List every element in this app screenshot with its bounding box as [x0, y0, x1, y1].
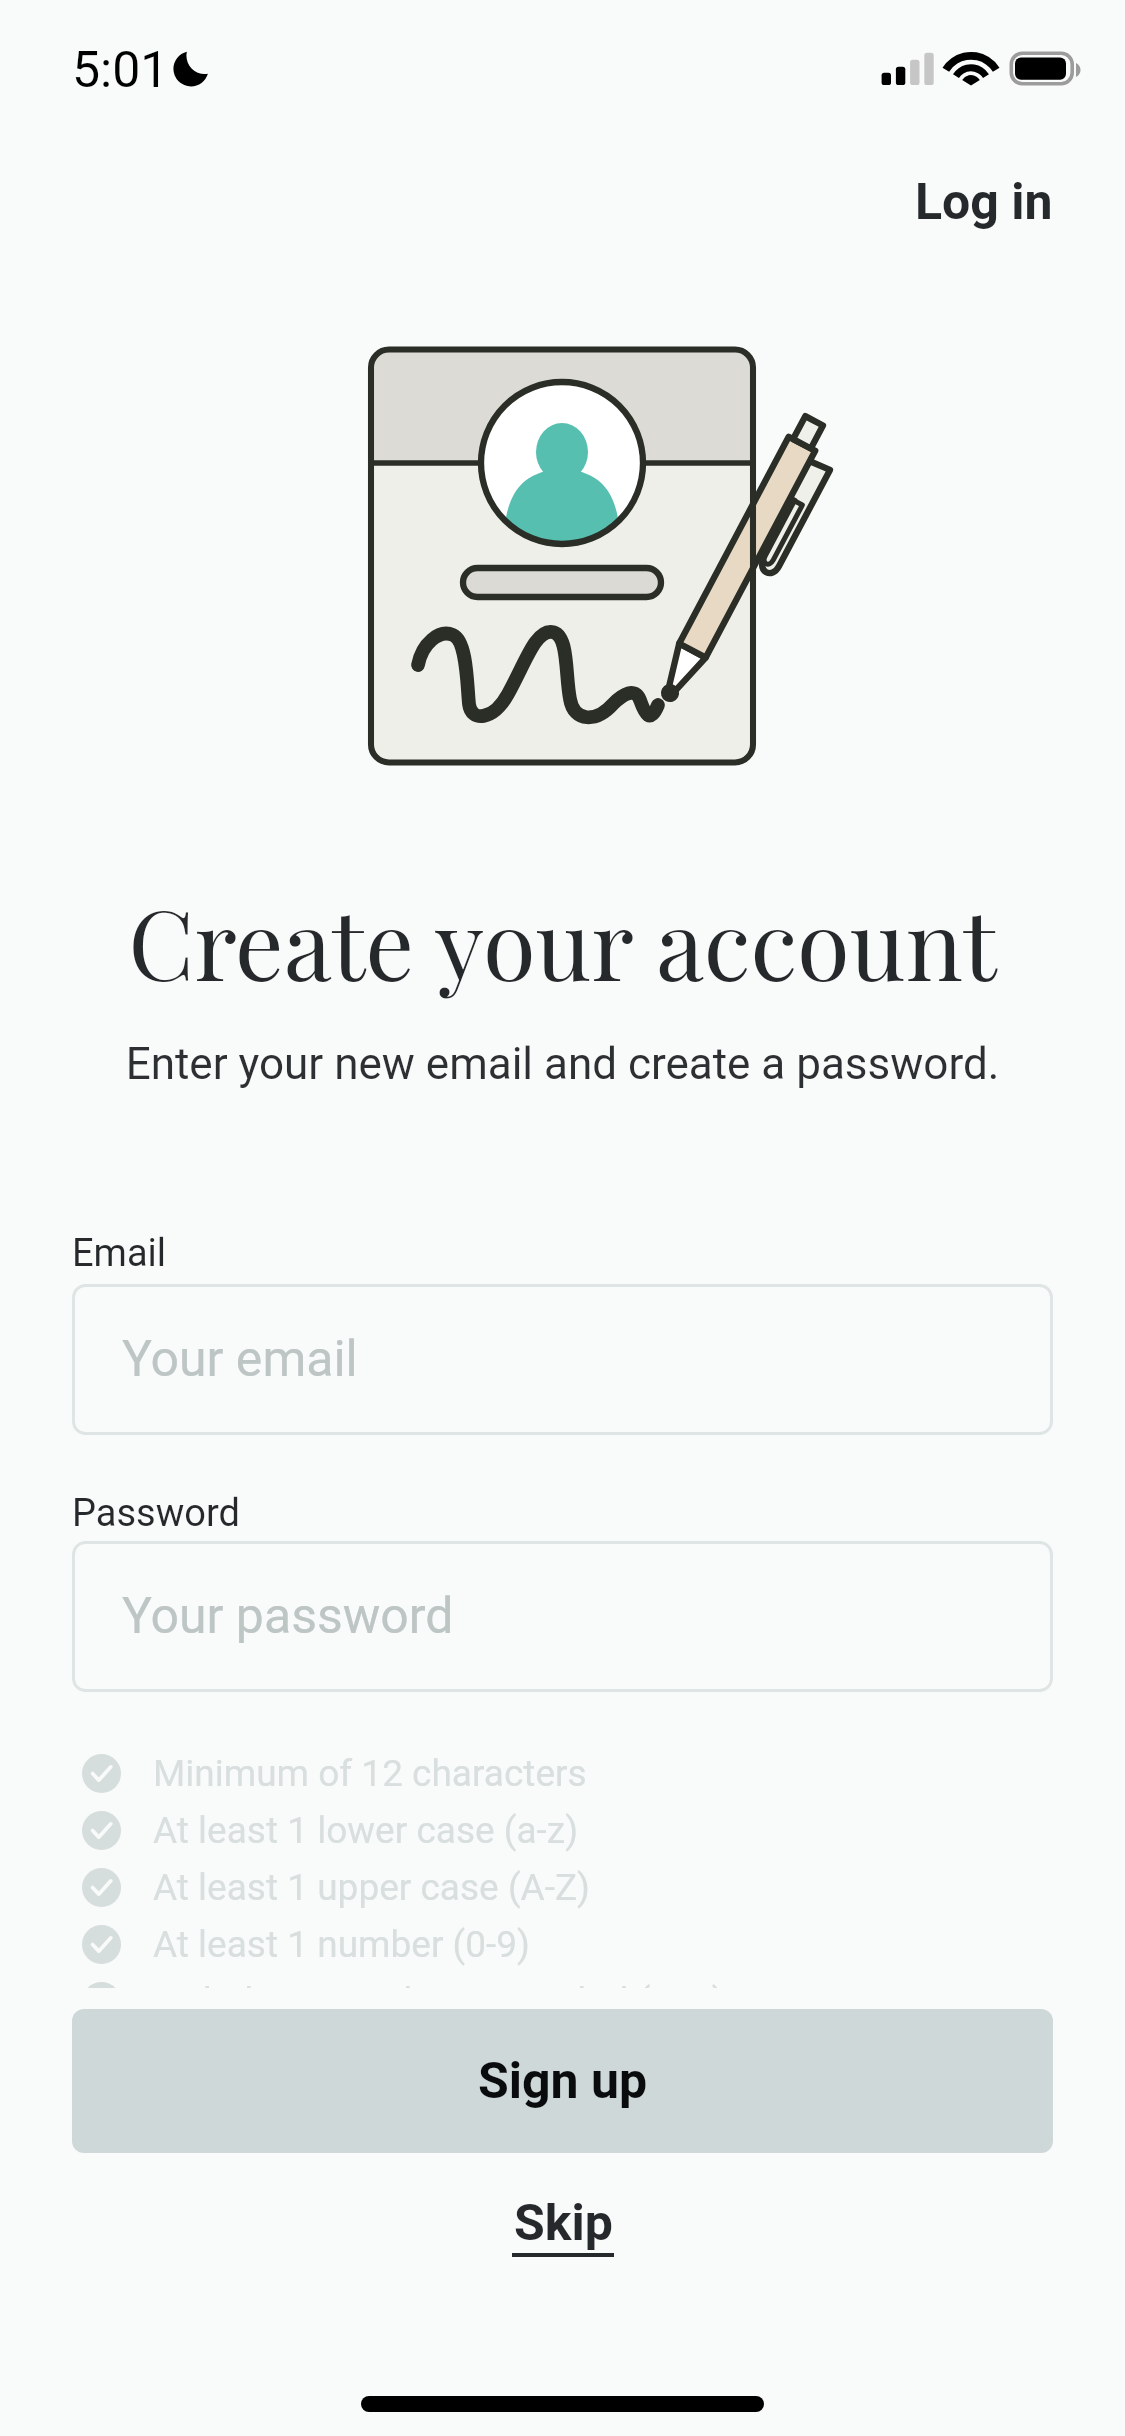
staticText: Enter your new email and create a passwo… — [0, 1038, 1125, 1090]
staticText: Email — [72, 1231, 167, 1276]
staticText: Password — [72, 1491, 240, 1536]
button[interactable]: Your email — [72, 1284, 1053, 1435]
staticText: Log in — [915, 173, 1053, 232]
button[interactable]: Your password — [72, 1541, 1053, 1692]
staticText: Create your account — [0, 877, 1125, 1005]
button[interactable]: Sign up — [72, 2009, 1053, 2153]
staticText: At least 1 lower case (a-z) — [153, 1809, 579, 1852]
staticText: 5:01 — [72, 41, 169, 100]
staticText: Sign up — [478, 2052, 648, 2111]
staticText: Skip — [514, 2194, 613, 2253]
staticText: At least 1 number (0-9) — [153, 1923, 530, 1966]
staticText: At least 1 upper case (A-Z) — [153, 1866, 590, 1909]
button[interactable]: Log in — [880, 155, 1088, 250]
staticText: Your email — [122, 1330, 358, 1389]
button[interactable]: Skip — [452, 2180, 674, 2281]
staticText: Minimum of 12 characters — [153, 1752, 587, 1795]
staticText: Includes a number or symbol (0-9!) — [153, 1980, 725, 2023]
staticText: Your password — [122, 1587, 454, 1646]
